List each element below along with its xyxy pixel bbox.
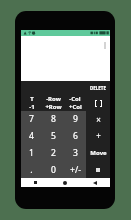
button[interactable]: × [86,111,110,127]
staticText: 1 [29,147,34,159]
staticText: DELETE [90,85,106,91]
button[interactable]: 9 [64,111,86,127]
button[interactable]: +Row [42,103,64,111]
button[interactable]: Move [86,144,110,161]
staticText: -Row [46,95,61,103]
button[interactable]: Brackets [86,95,110,111]
staticText: 7 [29,113,34,125]
staticText: +/- [70,164,81,176]
button[interactable]: 0 [42,161,64,178]
button[interactable]: Back [80,178,110,187]
staticText: Move [90,149,107,157]
staticText: + [96,130,101,141]
staticText: 4 [29,130,34,142]
staticText: 3 [73,147,78,159]
button[interactable]: +/- [64,161,86,178]
button[interactable]: Home [50,178,80,187]
staticText: -Col [69,95,81,103]
button[interactable]: -Row [42,95,64,103]
staticText: -1 [29,103,35,111]
staticText: . [30,164,33,176]
button[interactable]: 1 [21,144,42,161]
button[interactable]: Recents [21,178,50,187]
button[interactable]: 6 [64,127,86,144]
staticText: +Row [45,103,62,111]
button[interactable]: 7 [21,111,42,127]
button[interactable]: 4 [21,127,42,144]
staticText: × [96,114,101,125]
staticText: 8 [51,113,56,125]
staticText: 9 [73,113,78,125]
staticText: T [30,95,34,103]
staticText: 6 [73,130,78,142]
button[interactable]: Enter [86,161,110,178]
button[interactable]: . [21,161,42,178]
button[interactable]: 2 [42,144,64,161]
staticText: +Col [69,103,82,111]
staticText: 5 [51,130,56,142]
button[interactable]: -1 [21,103,42,111]
button[interactable]: 8 [42,111,64,127]
button[interactable]: 5 [42,127,64,144]
staticText: 0 [51,164,56,176]
button[interactable]: DELETE [86,81,110,95]
button[interactable]: 3 [64,144,86,161]
button[interactable]: -Col [64,95,86,103]
button[interactable]: + [86,127,110,144]
button[interactable]: +Col [64,103,86,111]
button[interactable]: T [21,95,42,103]
staticText: 2 [51,147,56,159]
